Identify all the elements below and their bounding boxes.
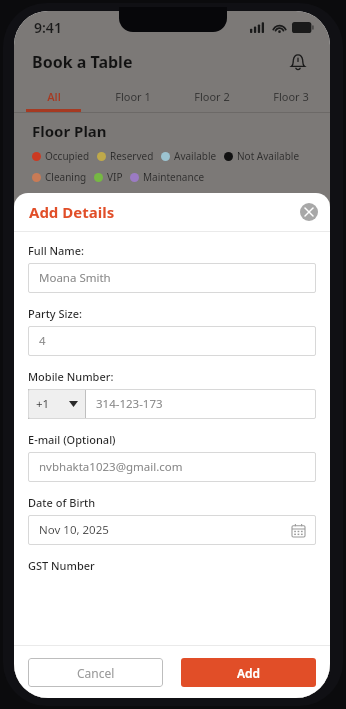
button[interactable]: Floor 2 — [172, 81, 251, 112]
staticText: 4 — [39, 333, 46, 349]
button[interactable]: nvbhakta1023@gmail.com — [28, 452, 316, 482]
staticText: nvbhakta1023@gmail.com — [39, 459, 183, 475]
staticText: 9:41 — [34, 18, 62, 37]
staticText: Cleaning — [45, 170, 87, 184]
staticText: Add — [237, 665, 261, 681]
button[interactable]: Cancel — [28, 658, 163, 687]
staticText: Date of Birth — [28, 495, 96, 510]
staticText: Moana Smith — [39, 270, 111, 286]
staticText: Not Available — [237, 149, 300, 163]
staticText: E-mail (Optional) — [28, 432, 116, 447]
button[interactable]: Close — [300, 203, 318, 221]
staticText: Occupied — [45, 149, 90, 163]
staticText: All — [47, 89, 61, 104]
staticText: Floor 2 — [194, 89, 230, 104]
staticText: Floor Plan — [32, 121, 107, 141]
staticText: Add Details — [29, 202, 115, 222]
button[interactable]: 4 — [28, 326, 316, 356]
staticText: GST Number — [28, 558, 95, 573]
button[interactable]: Notifications — [284, 48, 312, 76]
staticText: Reserved — [110, 149, 154, 163]
staticText: Cancel — [77, 665, 115, 681]
button[interactable]: 314-123-173 — [86, 389, 316, 419]
staticText: Nov 10, 2025 — [39, 522, 109, 538]
staticText: Party Size: — [28, 306, 83, 321]
button[interactable]: Floor 1 — [93, 81, 172, 112]
staticText: Full Name: — [28, 243, 85, 258]
staticText: VIP — [107, 170, 123, 184]
button[interactable]: Nov 10, 2025 — [28, 515, 316, 545]
staticText: Floor 1 — [115, 89, 151, 104]
button[interactable]: Moana Smith — [28, 263, 316, 293]
staticText: Book a Table — [32, 51, 133, 73]
staticText: Floor 3 — [273, 89, 309, 104]
button[interactable]: Add — [181, 658, 316, 687]
staticText: Maintenance — [143, 170, 205, 184]
staticText: Mobile Number: — [28, 369, 114, 384]
staticText: Available — [174, 149, 217, 163]
staticText: +1 — [36, 396, 50, 412]
other: Pick date — [292, 524, 305, 537]
button[interactable]: +1 — [28, 389, 86, 419]
button[interactable]: Floor 3 — [251, 81, 330, 112]
button[interactable]: All — [14, 81, 93, 112]
staticText: 314-123-173 — [96, 396, 163, 412]
